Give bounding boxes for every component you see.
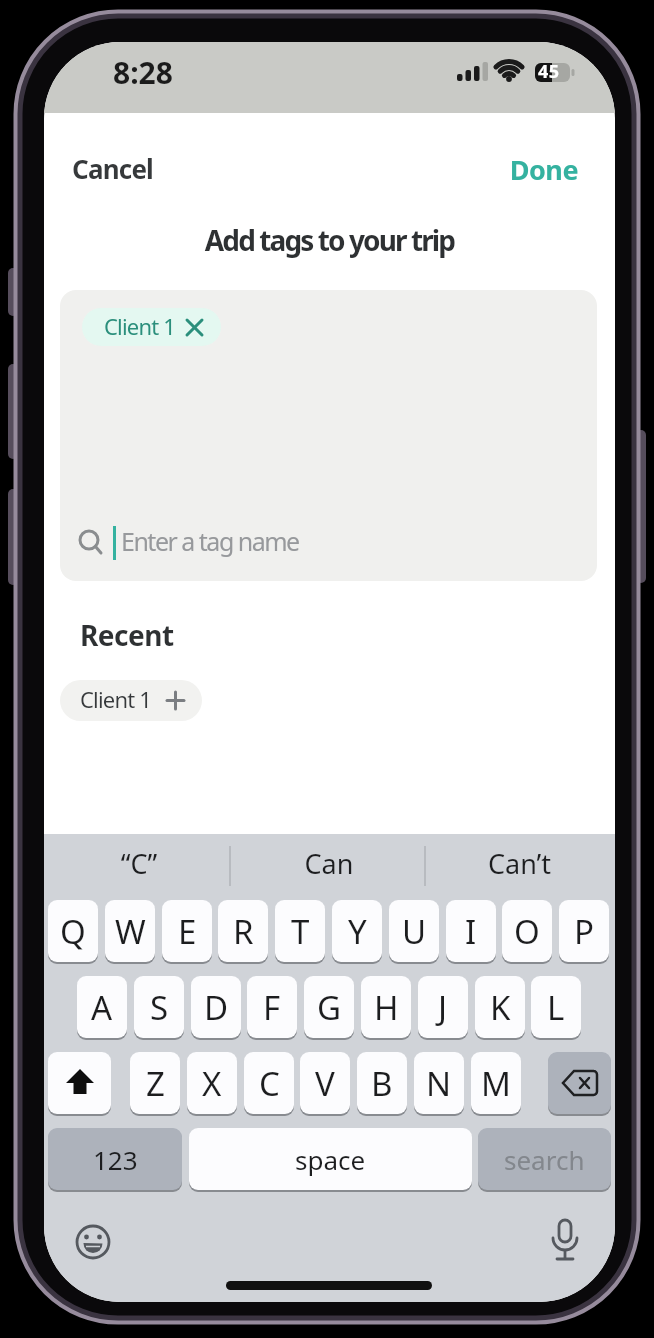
staticText: 8:28 [113, 52, 173, 93]
staticText: Add tags to your trip [44, 221, 615, 259]
button[interactable]: 123 [48, 1128, 182, 1190]
staticText: Can [234, 845, 424, 882]
staticText: Enter a tag name [121, 524, 299, 558]
button[interactable]: N [414, 1052, 464, 1114]
button[interactable]: J [418, 976, 468, 1038]
button[interactable]: I [446, 900, 496, 962]
staticText: O [514, 909, 540, 954]
button[interactable]: U [389, 900, 439, 962]
button[interactable]: Y [332, 900, 382, 962]
staticText: T [291, 909, 310, 954]
button[interactable]: T [275, 900, 325, 962]
button[interactable]: H [361, 976, 411, 1038]
button[interactable]: C [244, 1052, 294, 1114]
button[interactable] [82, 308, 221, 346]
staticText: Z [146, 1061, 165, 1106]
button[interactable]: F [247, 976, 297, 1038]
staticText: H [374, 985, 399, 1030]
staticText: Client 1 [104, 311, 176, 341]
button[interactable]: space [189, 1128, 472, 1190]
button[interactable] [548, 1052, 611, 1114]
button[interactable]: Z [130, 1052, 180, 1114]
button[interactable]: S [134, 976, 184, 1038]
staticText: “C” [44, 845, 234, 882]
button[interactable]: Cancel [60, 144, 180, 194]
button[interactable]: Q [48, 900, 98, 962]
button[interactable]: M [471, 1052, 521, 1114]
button[interactable] [60, 680, 202, 721]
staticText: L [547, 985, 565, 1030]
button[interactable]: K [475, 976, 525, 1038]
staticText: 45 [538, 59, 560, 84]
staticText: P [574, 909, 594, 954]
staticText: A [91, 985, 113, 1030]
staticText: Can’t [424, 845, 615, 882]
button[interactable]: X [187, 1052, 237, 1114]
button[interactable]: L [531, 976, 581, 1038]
button[interactable] [424, 834, 615, 898]
staticText: R [233, 909, 254, 954]
staticText: F [263, 985, 281, 1030]
staticText: W [115, 909, 146, 954]
staticText: Q [60, 909, 86, 954]
button[interactable]: Done [448, 144, 578, 194]
staticText: I [465, 909, 477, 954]
button[interactable]: P [559, 900, 609, 962]
staticText: search [504, 1142, 585, 1177]
button[interactable] [234, 834, 424, 898]
staticText: Y [348, 909, 367, 954]
button[interactable] [48, 1052, 111, 1114]
staticText: V [315, 1061, 335, 1106]
staticText: Done [448, 151, 578, 188]
staticText: B [371, 1061, 393, 1106]
button[interactable]: R [218, 900, 268, 962]
button[interactable]: B [357, 1052, 407, 1114]
staticText: C [259, 1061, 280, 1106]
staticText: U [402, 909, 427, 954]
staticText: N [426, 1061, 452, 1106]
button[interactable]: search [478, 1128, 611, 1190]
staticText: space [295, 1142, 366, 1177]
button[interactable]: D [191, 976, 241, 1038]
staticText: Client 1 [80, 684, 152, 714]
staticText: X [202, 1061, 222, 1106]
button[interactable]: E [162, 900, 212, 962]
staticText: D [204, 985, 229, 1030]
staticText: G [317, 985, 342, 1030]
button[interactable]: V [300, 1052, 350, 1114]
staticText: 123 [93, 1142, 138, 1177]
button[interactable]: O [502, 900, 552, 962]
staticText: Cancel [72, 151, 154, 186]
button[interactable]: W [105, 900, 155, 962]
button[interactable]: G [304, 976, 354, 1038]
staticText: M [481, 1061, 511, 1106]
button[interactable] [44, 834, 234, 898]
staticText: S [150, 985, 169, 1030]
staticText: Recent [80, 616, 174, 654]
staticText: K [490, 985, 511, 1030]
button[interactable]: A [77, 976, 127, 1038]
staticText: E [178, 909, 197, 954]
staticText: J [438, 985, 448, 1030]
